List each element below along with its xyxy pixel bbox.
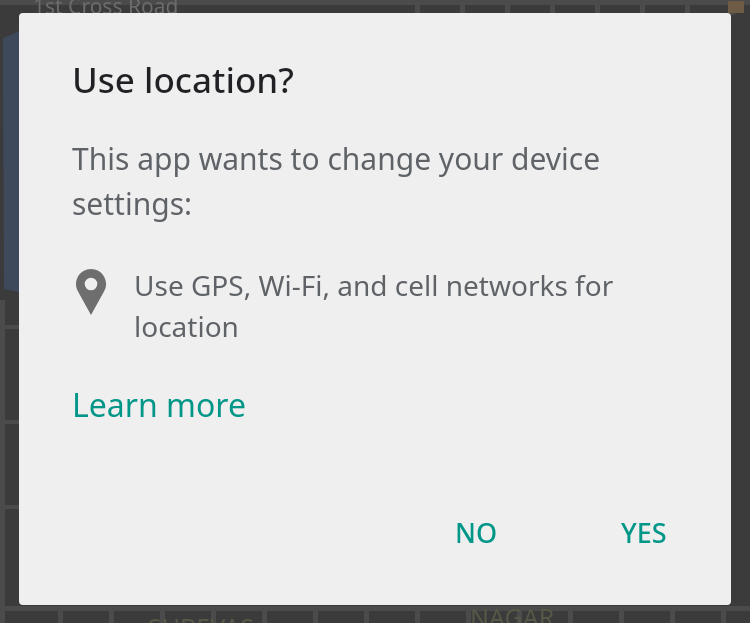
button[interactable]: Learn more [72, 383, 246, 427]
staticText: 1st Cross Road [33, 0, 179, 21]
staticText: Learn more [72, 383, 246, 427]
staticText: Use location? [72, 56, 294, 104]
other: Location [76, 269, 106, 315]
staticText: Use GPS, Wi-Fi, and cell networks for lo… [134, 266, 687, 345]
staticText: NO [455, 514, 498, 551]
staticText: SUBEVAS [148, 610, 254, 623]
staticText: YES [621, 514, 667, 551]
button[interactable]: YES [600, 499, 688, 566]
staticText: This app wants to change your device set… [72, 138, 701, 224]
staticText: NAGAR [470, 600, 555, 623]
button[interactable]: NO [434, 499, 519, 566]
